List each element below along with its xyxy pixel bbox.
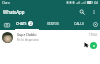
- button[interactable]: STATUS: [42, 19, 64, 30]
- button[interactable]: CALLS: [68, 19, 89, 30]
- staticText: CHATS: [16, 21, 27, 26]
- staticText: Supr Dabbi: [17, 32, 37, 37]
- staticText: Claro: [2, 1, 10, 5]
- staticText: STATUS: [47, 21, 59, 26]
- button[interactable]: Camera: [1, 19, 12, 30]
- staticText: WhatsApp: [3, 9, 25, 15]
- button[interactable]: Status ring: [92, 21, 99, 28]
- button[interactable]: CHATS: [15, 19, 39, 30]
- button[interactable]: Search: [77, 7, 87, 17]
- staticText: CALLS: [74, 21, 84, 26]
- staticText: 19:54: [89, 33, 97, 37]
- staticText: 2: [30, 22, 32, 26]
- button[interactable]: New chat: [90, 42, 97, 49]
- staticText: 21:04: [90, 1, 99, 5]
- button[interactable]: Supr Dabbi: [0, 30, 100, 44]
- button[interactable]: More options: [89, 7, 99, 17]
- staticText: Fic ki disposicio: [17, 38, 39, 42]
